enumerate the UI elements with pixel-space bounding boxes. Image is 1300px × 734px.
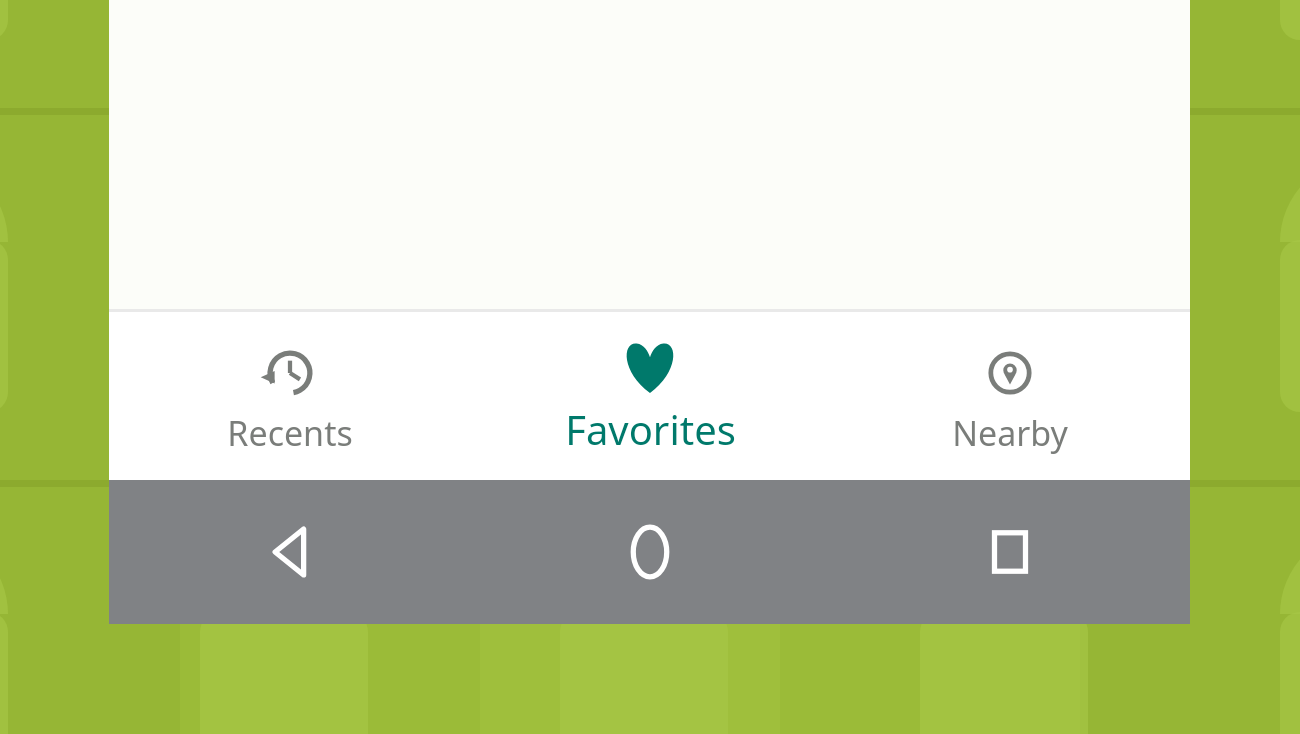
button[interactable]: Recent apps — [830, 480, 1190, 624]
button[interactable]: Recents — [109, 312, 470, 480]
button[interactable]: Nearby — [830, 312, 1190, 480]
button[interactable]: Favorites — [470, 312, 830, 480]
staticText: Recents — [227, 410, 353, 456]
staticText: Nearby — [952, 410, 1068, 456]
staticText: Favorites — [565, 402, 736, 456]
button[interactable]: Home — [470, 480, 830, 624]
button[interactable]: Back — [109, 480, 470, 624]
